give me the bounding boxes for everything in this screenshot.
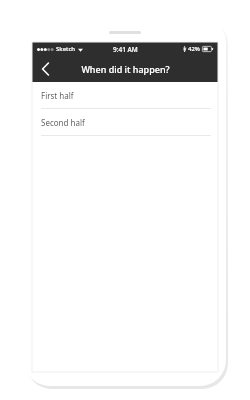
staticText: Second half [41,117,85,128]
staticText: 9:41 AM [113,45,138,54]
staticText: Sketch [56,45,76,53]
staticText: 42% [188,45,200,53]
staticText: When did it happen? [81,63,170,75]
button[interactable]: First half [32,82,218,109]
button[interactable]: Back [32,56,58,82]
staticText: First half [41,90,74,101]
button[interactable]: Second half [32,109,218,136]
